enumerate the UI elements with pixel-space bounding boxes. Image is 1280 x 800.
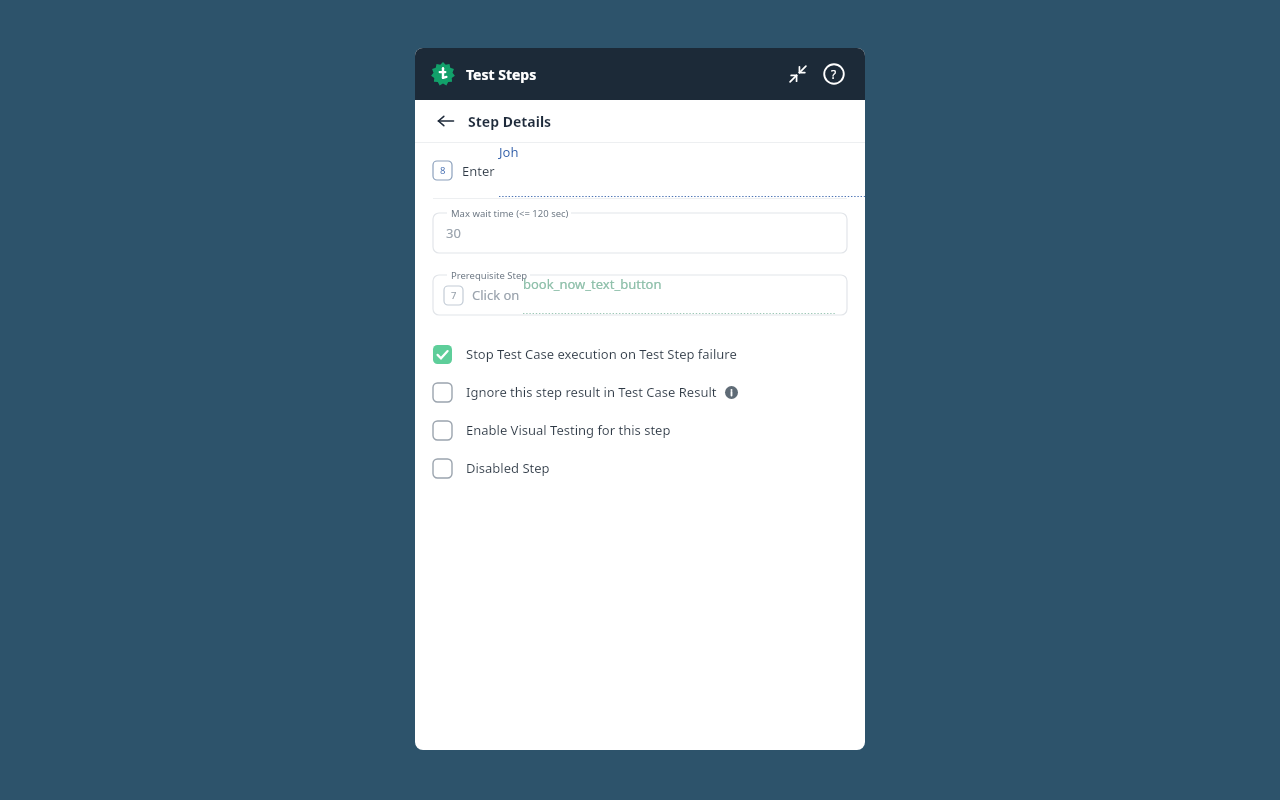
other: Info: [725, 386, 738, 399]
button[interactable]: Disabled Step: [415, 449, 865, 487]
staticText: Joh: [499, 143, 519, 161]
button[interactable]: Help: [819, 59, 849, 89]
button[interactable]: Back: [433, 108, 459, 134]
button[interactable]: Ignore this step result in Test Case Res…: [415, 373, 865, 411]
staticText: Prerequisite Step: [451, 269, 528, 282]
button[interactable]: Prerequisite Step: [433, 275, 847, 315]
staticText: Click on: [472, 286, 523, 304]
button[interactable]: Stop Test Case execution on Test Step fa…: [415, 335, 865, 373]
button[interactable]: Collapse: [783, 59, 813, 89]
staticText: book_now_text_button: [523, 275, 662, 293]
staticText: Step Details: [468, 112, 552, 131]
button[interactable]: 8: [415, 143, 865, 198]
staticText: Ignore this step result in Test Case Res…: [466, 383, 717, 401]
staticText: Max wait time (<= 120 sec): [451, 207, 569, 220]
button[interactable]: Enable Visual Testing for this step: [415, 411, 865, 449]
staticText: 30: [446, 224, 461, 242]
staticText: Enable Visual Testing for this step: [466, 421, 671, 439]
staticText: Disabled Step: [466, 459, 550, 477]
staticText: ?: [831, 66, 837, 82]
staticText: 8: [440, 164, 446, 177]
staticText: Stop Test Case execution on Test Step fa…: [466, 345, 737, 363]
staticText: Test Steps: [466, 65, 537, 84]
staticText: Enter: [462, 162, 499, 180]
staticText: 7: [451, 289, 457, 302]
